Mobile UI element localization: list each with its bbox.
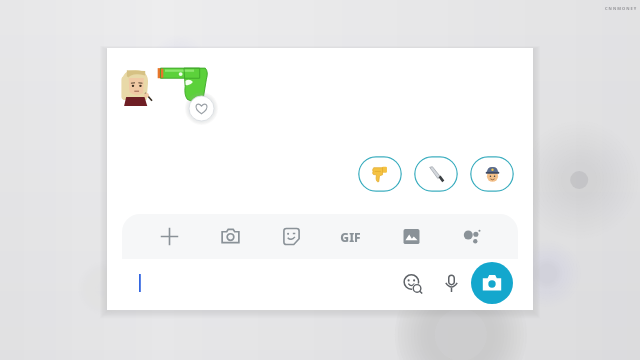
button[interactable]: Avatar	[118, 68, 152, 106]
button[interactable]: Voice input	[436, 268, 466, 298]
button[interactable]: Camera	[200, 214, 261, 259]
button[interactable]: Search emoji	[397, 268, 427, 298]
button[interactable]: Knife reaction	[414, 156, 458, 192]
button[interactable]: Water pistol sticker	[156, 58, 212, 104]
button[interactable]: Thumbs down reaction	[358, 156, 402, 192]
button[interactable]: Gallery	[381, 214, 441, 259]
button[interactable]: GIF	[321, 214, 381, 259]
staticText: GIF	[340, 229, 361, 245]
button[interactable]: Open camera	[471, 262, 513, 304]
button[interactable]: Heart reaction	[188, 95, 215, 122]
button[interactable]: Stickers	[261, 214, 321, 259]
button[interactable]: Police officer reaction	[470, 156, 514, 192]
staticText: C N N M O N E Y	[605, 6, 637, 11]
button[interactable]: Add	[139, 214, 200, 259]
button[interactable]: Assistant	[441, 214, 501, 259]
